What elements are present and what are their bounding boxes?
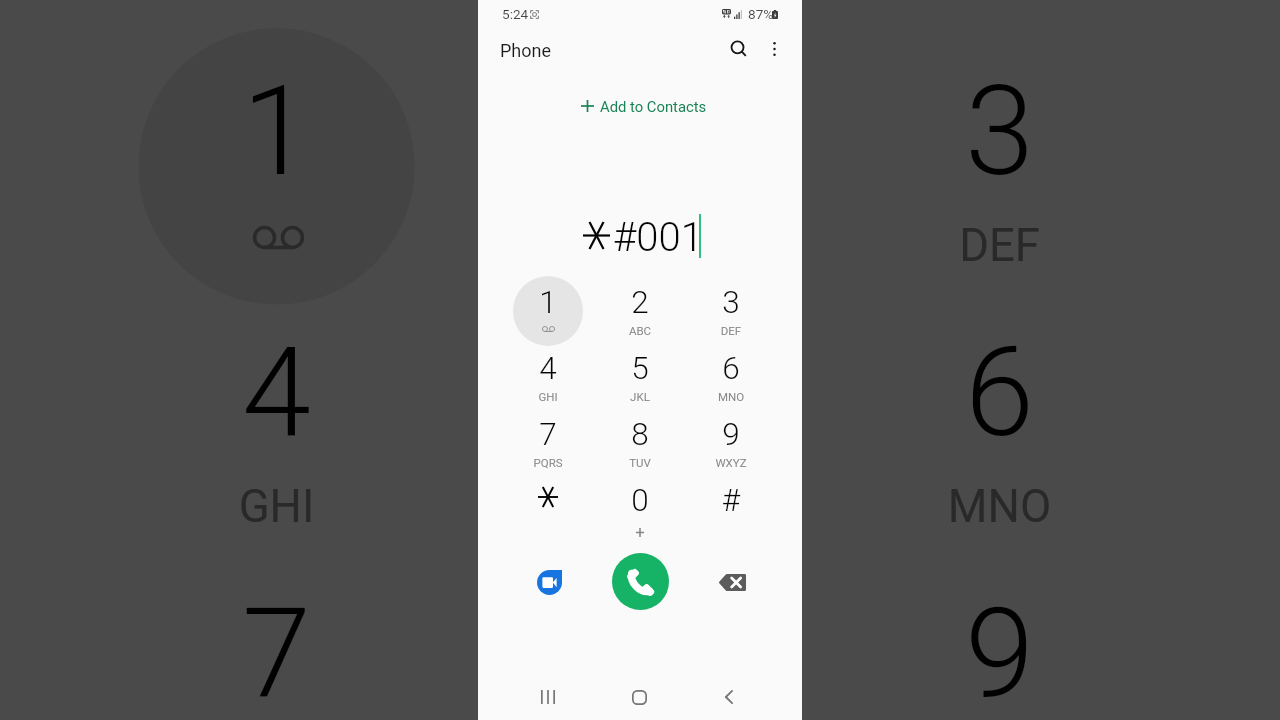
- staticText: ABC: [607, 324, 673, 337]
- staticText: 5:24: [502, 6, 529, 22]
- staticText: 4: [146, 320, 407, 467]
- button[interactable]: Video call: [521, 554, 577, 610]
- staticText: 9: [698, 416, 764, 453]
- staticText: DEF: [869, 218, 1130, 269]
- button[interactable]: 3: [698, 278, 764, 344]
- staticText: 5: [510, 320, 770, 467]
- button[interactable]: More options: [756, 31, 792, 67]
- staticText: 7: [146, 581, 407, 720]
- button[interactable]: 9: [698, 410, 764, 476]
- button[interactable]: 6: [698, 344, 764, 410]
- button[interactable]: 5: [607, 344, 673, 410]
- staticText: 7: [515, 416, 581, 453]
- button[interactable]: 1: [515, 278, 581, 344]
- button[interactable]: Add to Contacts: [575, 94, 713, 118]
- button[interactable]: 7: [515, 410, 581, 476]
- staticText: MNO: [698, 390, 764, 403]
- staticText: GHI: [146, 478, 407, 530]
- staticText: 2: [510, 60, 770, 206]
- staticText: Phone: [500, 40, 552, 61]
- staticText: 6: [698, 350, 764, 387]
- button[interactable]: [515, 476, 581, 542]
- staticText: DEF: [698, 324, 764, 337]
- staticText: WXYZ: [698, 456, 764, 469]
- staticText: 1: [146, 60, 407, 206]
- staticText: 87%: [748, 6, 774, 22]
- button[interactable]: 4: [515, 344, 581, 410]
- staticText: Add to Contacts: [600, 98, 707, 115]
- button[interactable]: Search: [717, 27, 759, 69]
- staticText: 4: [515, 350, 581, 387]
- staticText: 6: [869, 320, 1130, 467]
- button[interactable]: Back: [705, 673, 753, 720]
- staticText: #001: [613, 214, 703, 261]
- staticText: JKL: [607, 390, 673, 403]
- staticText: 5: [607, 350, 673, 387]
- button[interactable]: Recents: [524, 673, 572, 720]
- staticText: 8: [607, 416, 673, 453]
- staticText: PQRS: [515, 456, 581, 469]
- staticText: 8: [510, 581, 770, 720]
- staticText: 2: [607, 284, 673, 321]
- button[interactable]: 2: [607, 278, 673, 344]
- button[interactable]: #: [698, 476, 764, 542]
- staticText: TUV: [607, 456, 673, 469]
- button[interactable]: Backspace: [704, 554, 760, 610]
- staticText: #: [698, 482, 764, 519]
- staticText: 9: [869, 581, 1130, 720]
- button[interactable]: 0: [607, 476, 673, 542]
- staticText: 3: [698, 284, 764, 321]
- button[interactable]: 8: [607, 410, 673, 476]
- staticText: 3: [869, 60, 1130, 206]
- staticText: GHI: [515, 390, 581, 403]
- staticText: ABC: [510, 218, 770, 269]
- button[interactable]: Home: [615, 673, 663, 720]
- button[interactable]: Call: [612, 553, 669, 610]
- staticText: 1: [515, 284, 581, 321]
- staticText: 0: [607, 482, 673, 519]
- staticText: MNO: [869, 478, 1130, 530]
- staticText: JKL: [510, 478, 770, 530]
